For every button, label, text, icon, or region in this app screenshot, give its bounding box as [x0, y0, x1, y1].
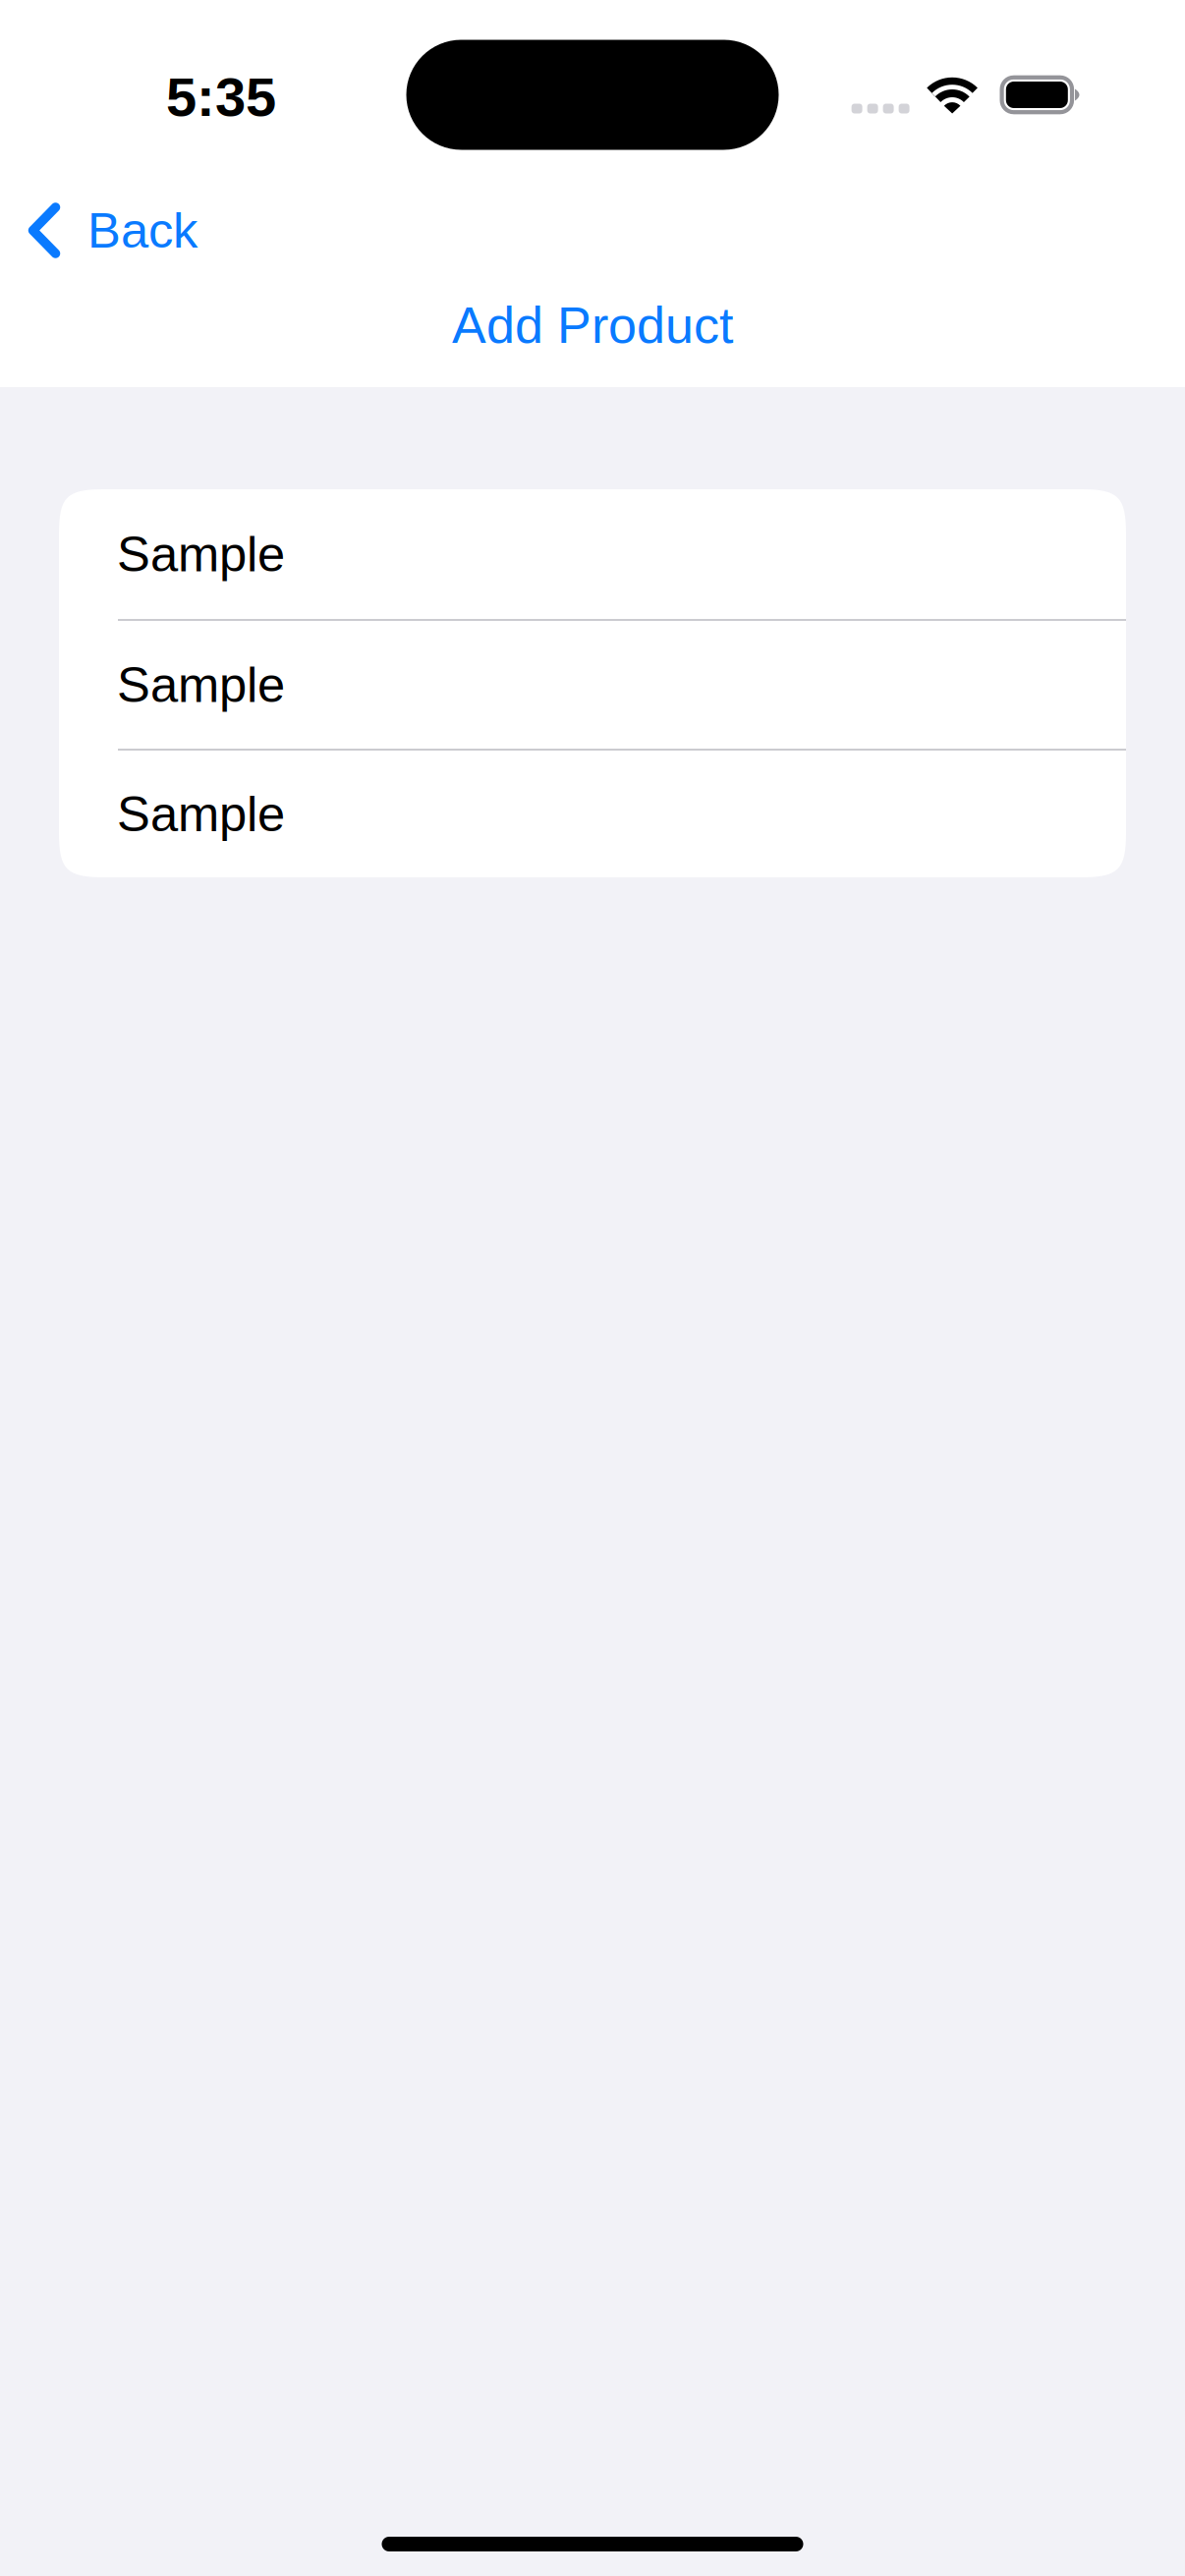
button[interactable]: Back — [0, 190, 221, 271]
staticText: Sample — [117, 526, 285, 582]
staticText: Add Product — [452, 297, 733, 354]
staticText: Sample — [117, 657, 285, 713]
button[interactable]: Sample — [59, 751, 1126, 877]
staticText: 5:35 — [166, 66, 276, 128]
button[interactable]: Sample — [59, 621, 1126, 751]
staticText: Back — [87, 203, 197, 258]
staticText: Sample — [117, 786, 285, 842]
button[interactable]: Add Product — [0, 271, 1185, 379]
button[interactable]: Sample — [59, 489, 1126, 621]
